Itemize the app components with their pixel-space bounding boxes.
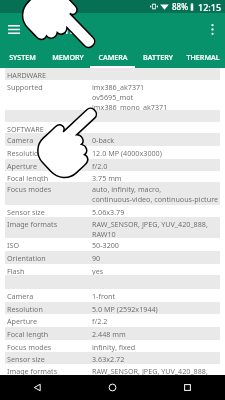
- staticText: RAW_SENSOR, JPEG, YUV_420_888,: [92, 366, 208, 375]
- button[interactable]: Recent apps: [150, 375, 225, 400]
- staticText: Focus modes: [7, 342, 52, 352]
- staticText: THERMAL: [186, 52, 220, 62]
- staticText: f/2.2: [92, 316, 108, 326]
- staticText: 90: [92, 253, 101, 263]
- button[interactable]: THERMAL: [180, 45, 225, 68]
- button[interactable]: Image formats: [5, 217, 220, 238]
- button[interactable]: Open navigation drawer: [0, 15, 28, 43]
- staticText: infinity, fixed: [92, 342, 136, 352]
- staticText: Camera: [7, 135, 34, 145]
- staticText: f/2.0: [92, 161, 108, 171]
- button[interactable]: BATTERY: [135, 45, 180, 68]
- staticText: SYSTEM: [9, 52, 36, 62]
- staticText: Image formats: [7, 219, 58, 229]
- staticText: Supported: [7, 82, 43, 92]
- button[interactable]: CAMERA: [90, 45, 135, 68]
- button[interactable]: Camera: [5, 133, 220, 146]
- button[interactable]: ISO: [5, 238, 220, 251]
- staticText: 0-back: [92, 135, 115, 145]
- staticText: 50-3200: [92, 240, 119, 250]
- button[interactable]: More options: [199, 16, 225, 42]
- staticText: Camera: [7, 291, 34, 301]
- button[interactable]: Focal length: [5, 327, 220, 340]
- staticText: SOFTWARE: [7, 124, 44, 133]
- staticText: Aperture: [7, 161, 37, 171]
- staticText: continuous-video, continuous-picture: [92, 194, 219, 204]
- button[interactable]: Focus modes: [5, 182, 220, 205]
- staticText: RAW_SENSOR, JPEG, YUV_420_888,: [92, 219, 208, 229]
- button[interactable]: MEMORY: [45, 45, 90, 68]
- staticText: 3.75 mm: [92, 173, 122, 182]
- staticText: Focal length: [7, 329, 49, 339]
- staticText: HARDWARE: [7, 70, 47, 80]
- staticText: Sensor size: [7, 354, 45, 364]
- staticText: Flash: [7, 266, 25, 275]
- staticText: 88%: [172, 1, 188, 12]
- staticText: 3.63x2.72: [92, 354, 125, 364]
- button[interactable]: Aperture: [5, 314, 220, 327]
- button[interactable]: SYSTEM: [0, 45, 45, 68]
- button[interactable]: Orientation: [5, 251, 220, 264]
- staticText: MEMORY: [52, 52, 84, 62]
- staticText: imx386_mono_ak7371: [92, 102, 168, 110]
- staticText: 5.06x3.79: [92, 207, 125, 217]
- staticText: Image formats: [7, 366, 58, 375]
- staticText: ISO: [7, 240, 19, 250]
- staticText: 2.448 mm: [92, 329, 126, 339]
- staticText: Info HW: [33, 21, 80, 37]
- staticText: auto, infinity, macro,: [92, 184, 162, 194]
- button[interactable]: Image formats: [5, 364, 220, 375]
- staticText: 5.0 MP (2592x1944): [92, 304, 158, 314]
- button[interactable]: SOFTWARE: [5, 122, 220, 133]
- button[interactable]: Focus modes: [5, 340, 220, 352]
- staticText: Sensor size: [7, 207, 45, 217]
- button[interactable]: Focal length: [5, 171, 220, 182]
- staticText: RAW10: [92, 229, 116, 238]
- staticText: CAMERA: [98, 52, 128, 62]
- button[interactable]: Camera: [5, 289, 220, 302]
- button[interactable]: Back: [0, 375, 75, 400]
- button[interactable]: Supported: [5, 80, 220, 110]
- button[interactable]: Flash: [5, 264, 220, 275]
- staticText: Focus modes: [7, 184, 52, 194]
- staticText: Resolution: [7, 304, 43, 314]
- button[interactable]: HARDWARE: [5, 68, 220, 80]
- staticText: 12:15: [198, 1, 222, 13]
- staticText: ov5695_mot: [92, 92, 134, 102]
- button[interactable]: Sensor size: [5, 205, 220, 217]
- staticText: 1-front: [92, 291, 116, 301]
- staticText: Resolution: [7, 148, 43, 158]
- staticText: yes: [92, 266, 104, 275]
- button[interactable]: Aperture: [5, 159, 220, 171]
- staticText: BATTERY: [143, 52, 173, 62]
- staticText: imx386_ak7371: [92, 82, 145, 92]
- staticText: 12.0 MP (4000x3000): [92, 148, 162, 158]
- button[interactable]: Sensor size: [5, 352, 220, 364]
- staticText: Orientation: [7, 253, 46, 263]
- button[interactable]: Resolution: [5, 146, 220, 159]
- button[interactable]: [5, 110, 220, 122]
- staticText: Aperture: [7, 316, 37, 326]
- button[interactable]: Resolution: [5, 302, 220, 314]
- button[interactable]: Home: [75, 375, 150, 400]
- staticText: Focal length: [7, 173, 49, 182]
